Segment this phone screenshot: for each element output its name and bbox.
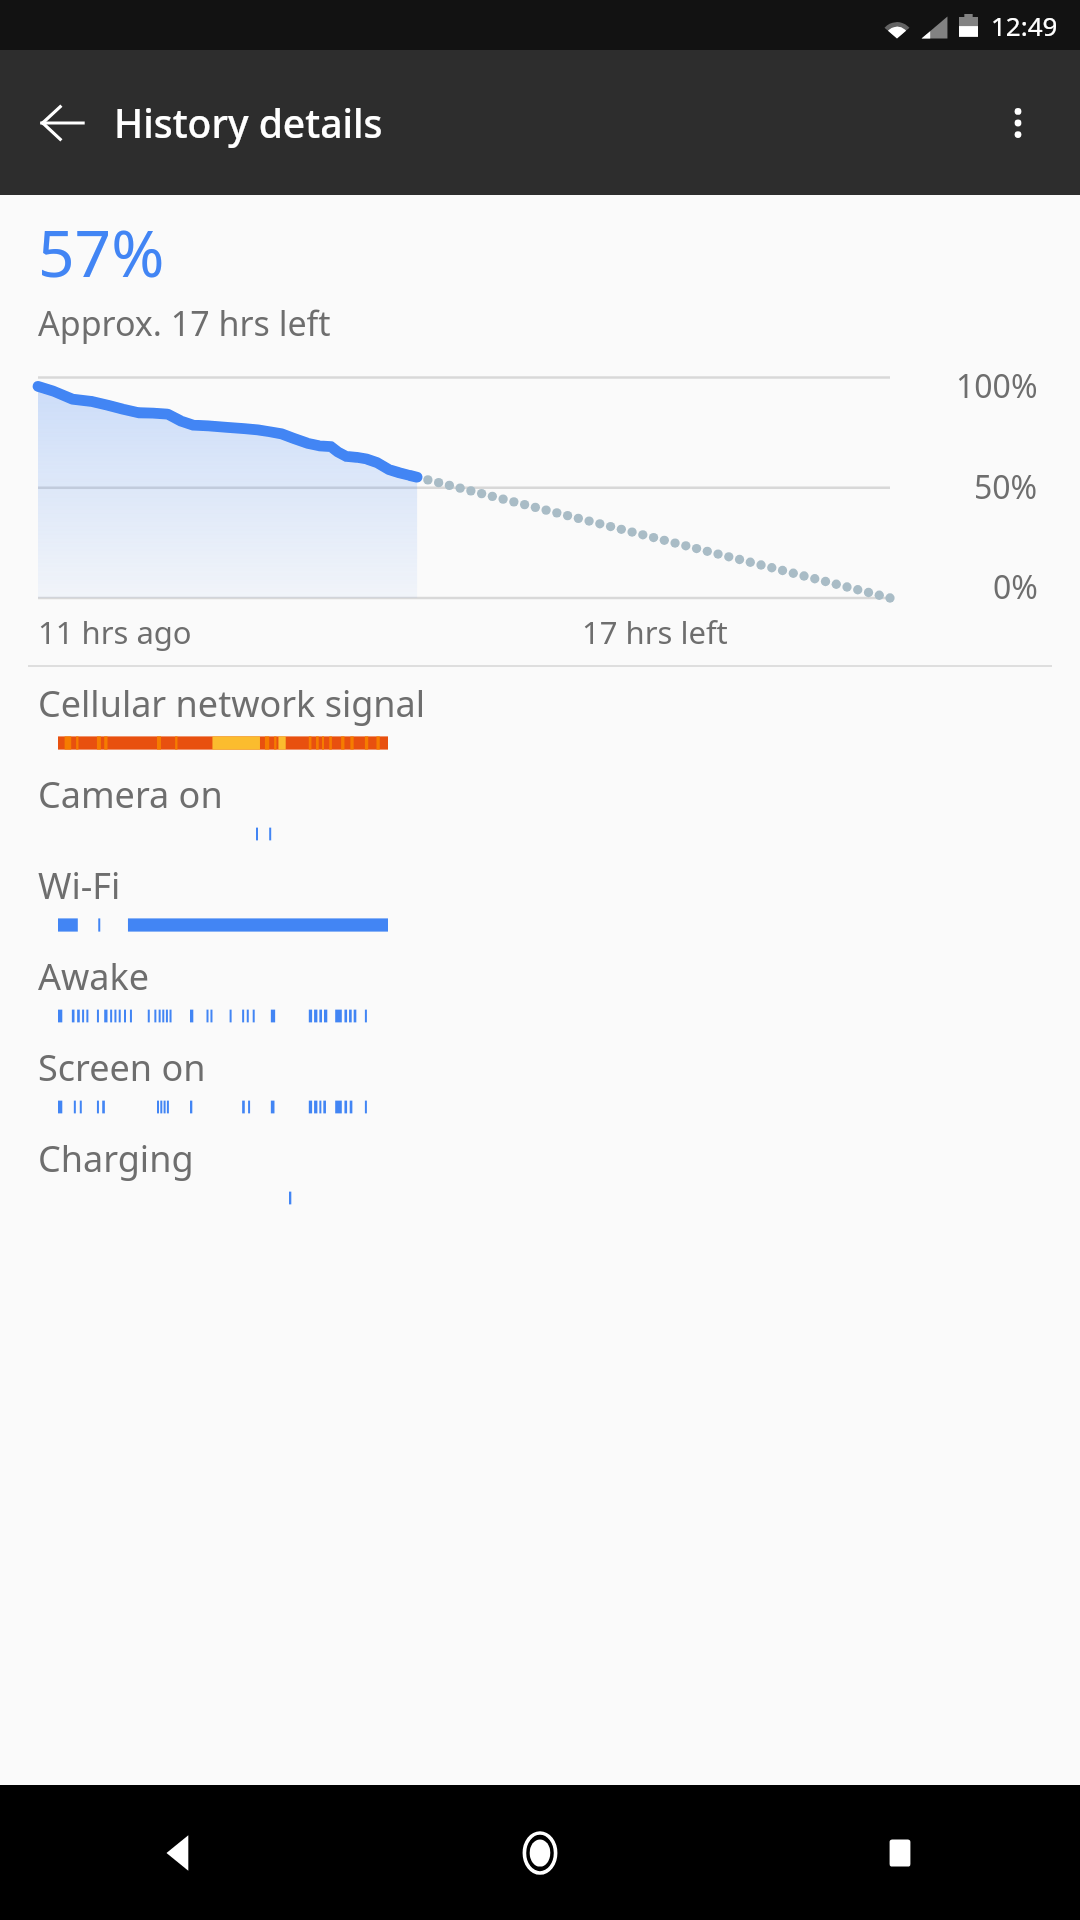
staticText: 57% <box>38 209 165 296</box>
button[interactable]: More options <box>972 77 1064 169</box>
staticText: Awake <box>38 952 150 1001</box>
staticText: Camera on <box>38 770 223 819</box>
button[interactable]: Camera on <box>0 758 1080 849</box>
staticText: 0% <box>993 565 1038 609</box>
staticText: 12:49 <box>991 8 1058 43</box>
button[interactable]: Back <box>16 77 108 169</box>
button[interactable]: Back <box>0 1785 360 1920</box>
button[interactable]: Recents <box>720 1785 1080 1920</box>
staticText: Approx. 17 hrs left <box>38 300 331 346</box>
button[interactable]: Screen on <box>0 1031 1080 1122</box>
button[interactable]: Awake <box>0 940 1080 1031</box>
staticText: 11 hrs ago <box>38 611 192 653</box>
staticText: Screen on <box>38 1043 206 1092</box>
button[interactable]: Charging <box>0 1122 1080 1213</box>
button[interactable]: Wi-Fi <box>0 849 1080 940</box>
button[interactable]: Cellular network signal <box>0 667 1080 758</box>
button[interactable]: Home <box>360 1785 720 1920</box>
staticText: Cellular network signal <box>38 679 426 728</box>
staticText: History details <box>114 96 383 149</box>
staticText: Wi-Fi <box>38 861 121 910</box>
staticText: 17 hrs left <box>582 611 728 653</box>
staticText: 100% <box>956 364 1038 408</box>
staticText: 50% <box>974 465 1038 509</box>
staticText: Charging <box>38 1134 194 1183</box>
